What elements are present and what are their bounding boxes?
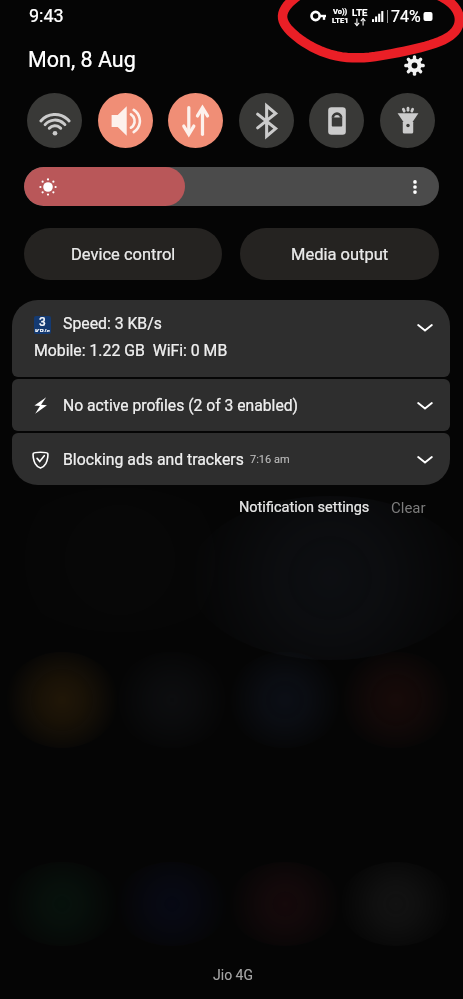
staticText: Speed: 3 KB/s bbox=[63, 314, 162, 333]
staticText: Clear bbox=[391, 499, 426, 517]
button[interactable]: More brightness options bbox=[407, 179, 423, 195]
staticText: 9:43 bbox=[29, 5, 64, 26]
button[interactable]: Wi-Fi bbox=[27, 93, 82, 148]
button[interactable]: Mobile data bbox=[168, 93, 223, 148]
staticText: Jio 4G bbox=[213, 967, 253, 983]
staticText: Media output bbox=[291, 245, 389, 264]
staticText: Mobile: 1.22 GB WiFi: 0 MB bbox=[34, 341, 228, 360]
button[interactable]: Device control bbox=[24, 228, 222, 280]
button[interactable]: Battery profiles bbox=[416, 396, 434, 414]
staticText: Blocking ads and trackers bbox=[63, 450, 244, 469]
staticText: 3 bbox=[39, 316, 46, 329]
button[interactable]: Settings bbox=[404, 55, 425, 76]
button[interactable]: Volume bbox=[98, 93, 153, 148]
staticText: KB/s bbox=[35, 328, 51, 332]
button[interactable]: Flashlight bbox=[380, 93, 435, 148]
button[interactable]: Media output bbox=[240, 228, 439, 280]
button[interactable]: Clear bbox=[381, 491, 436, 525]
button[interactable]: Auto-rotate lock bbox=[309, 93, 364, 148]
staticText: LTE bbox=[352, 7, 368, 18]
staticText: 74% bbox=[391, 7, 421, 26]
staticText: Notification settings bbox=[239, 499, 370, 516]
staticText: Device control bbox=[71, 245, 176, 264]
button[interactable]: Blocking ads and trackers bbox=[416, 450, 434, 468]
button[interactable]: 3 bbox=[12, 300, 450, 377]
button[interactable]: Bluetooth bbox=[239, 93, 294, 148]
staticText: 7:16 am bbox=[250, 453, 290, 466]
staticText: Mon, 8 Aug bbox=[28, 47, 136, 72]
staticText: No active profiles (2 of 3 enabled) bbox=[63, 396, 299, 414]
button[interactable]: Brightness bbox=[24, 167, 439, 206]
button[interactable]: No active profiles (2 of 3 enabled) bbox=[12, 379, 450, 431]
staticText: LTE1 bbox=[332, 16, 349, 25]
button[interactable]: Expand bbox=[416, 318, 434, 336]
button[interactable]: Notification settings bbox=[229, 491, 380, 524]
button[interactable]: Blocking ads and trackers bbox=[12, 433, 450, 485]
staticText: Vo)) bbox=[333, 7, 348, 16]
